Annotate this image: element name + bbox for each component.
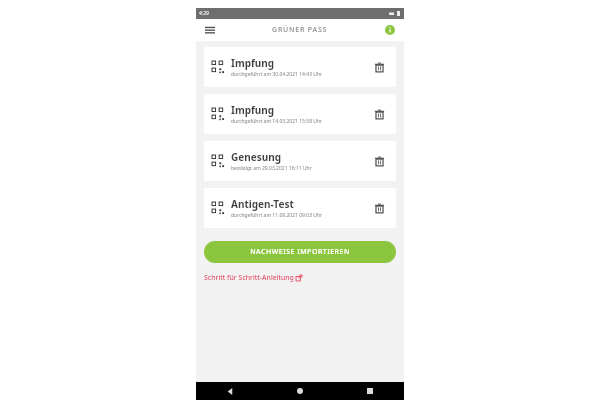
staticText: 4:29 [199,10,209,17]
button[interactable]: Delete [370,199,388,217]
button[interactable]: Impfung [204,47,396,87]
button[interactable]: Recents [362,383,378,399]
button[interactable]: Impfung [204,94,396,134]
button[interactable]: Antigen-Test [204,188,396,228]
button[interactable]: NACHWEISE IMPORTIEREN [204,241,396,263]
button[interactable]: Genesung [204,141,396,181]
button[interactable]: Delete [370,58,388,76]
staticText: durchgeführt am 30.04.2021 14:43 Uhr [231,71,323,78]
staticText: durchgeführt am 11.08.2021 09:03 Uhr [231,212,323,219]
staticText: Antigen-Test [231,197,294,211]
staticText: Impfung [231,56,275,70]
staticText: bestätigt am 29.03.2021 16:11 Uhr [231,165,312,172]
staticText: Genesung [231,150,282,164]
staticText: NACHWEISE IMPORTIEREN [250,247,350,257]
button[interactable]: Schritt für Schritt-Anleitung [204,273,302,283]
button[interactable]: Info [382,22,398,38]
button[interactable]: Delete [370,152,388,170]
staticText: Schritt für Schritt-Anleitung [204,273,294,283]
button[interactable]: Menu [202,22,218,38]
button[interactable]: Delete [370,105,388,123]
staticText: Impfung [231,103,275,117]
button[interactable]: Back [222,383,238,399]
button[interactable]: Home [292,383,308,399]
staticText: durchgeführt am 14.03.2021 15:58 Uhr [231,118,323,125]
staticText: GRÜNER PASS [272,25,328,35]
